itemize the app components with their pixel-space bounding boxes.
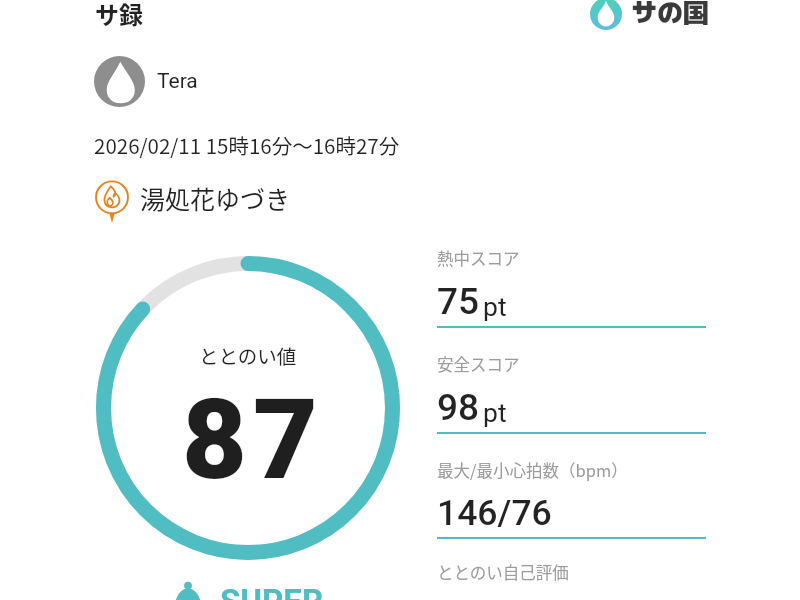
staticText: pt	[483, 291, 507, 322]
staticText: 75	[437, 280, 480, 323]
button[interactable]: Tera	[94, 56, 198, 107]
staticText: 熱中スコア	[437, 246, 520, 270]
button[interactable]: 最大/最小心拍数（bpm）	[437, 458, 706, 539]
staticText: ととのい値	[199, 341, 297, 369]
staticText: 安全スコア	[437, 352, 520, 376]
staticText: SUPER	[220, 582, 324, 600]
staticText: 146/76	[437, 492, 552, 534]
staticText: 2026/02/11 15時16分〜16時27分	[94, 130, 400, 160]
button[interactable]: 湯処花ゆづき	[94, 180, 291, 216]
staticText: 最大/最小心拍数（bpm）	[437, 458, 628, 482]
staticText: 98	[437, 386, 480, 429]
staticText: pt	[483, 397, 507, 428]
other: SUPER rank badge	[174, 580, 202, 600]
staticText: 湯処花ゆづき	[140, 180, 291, 216]
staticText: ととのい自己評価	[437, 560, 569, 584]
staticText: Tera	[157, 69, 198, 94]
staticText: サ録	[95, 0, 143, 31]
button[interactable]: サの国	[631, 0, 710, 30]
staticText: 87	[182, 374, 324, 505]
button[interactable]: 熱中スコア	[437, 246, 706, 328]
button[interactable]: サの国 logo	[590, 0, 622, 30]
button[interactable]: 安全スコア	[437, 352, 706, 434]
